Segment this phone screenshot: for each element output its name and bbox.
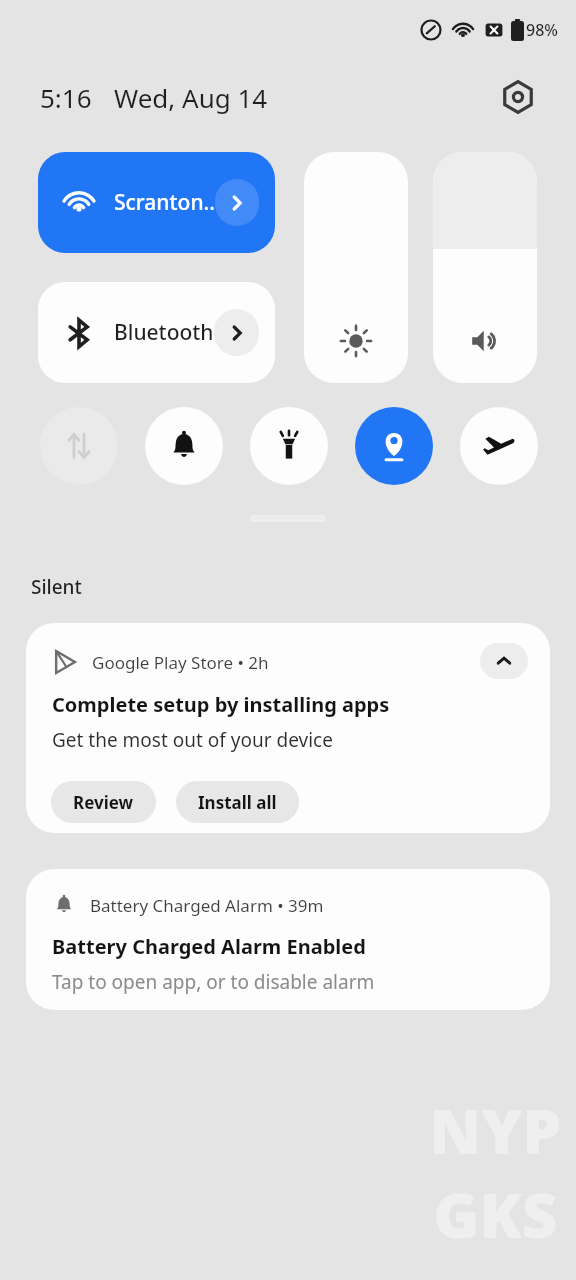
staticText: 5:16: [40, 80, 92, 115]
staticText: Get the most out of your device: [52, 727, 333, 753]
button[interactable]: Airplane mode: [460, 407, 538, 485]
staticText: Wed, Aug 14: [114, 80, 268, 115]
button[interactable]: Collapse notification: [480, 643, 528, 679]
button[interactable]: Ring mode: [145, 407, 223, 485]
staticText: Install all: [198, 791, 277, 814]
button[interactable]: Settings: [496, 75, 540, 119]
staticText: GKS: [433, 1172, 558, 1256]
staticText: Battery Charged Alarm • 39m: [90, 894, 324, 917]
staticText: 98%: [526, 19, 558, 41]
button[interactable]: Install all: [176, 781, 299, 823]
staticText: Battery Charged Alarm Enabled: [52, 933, 366, 960]
button[interactable]: Review: [51, 781, 156, 823]
button[interactable]: Open Scranton.. settings: [215, 179, 259, 226]
button[interactable]: Scranton..: [38, 152, 275, 253]
staticText: Google Play Store • 2h: [92, 651, 269, 674]
button[interactable]: Mobile data: [40, 407, 118, 485]
staticText: Bluetooth: [114, 318, 214, 347]
button[interactable]: Volume: [433, 152, 537, 383]
button[interactable]: Battery Charged Alarm • 39m: [26, 869, 550, 1010]
button[interactable]: Google Play Store • 2h: [26, 623, 550, 833]
button[interactable]: Location: [355, 407, 433, 485]
button[interactable]: Brightness: [304, 152, 408, 383]
staticText: NYP: [429, 1088, 562, 1172]
button[interactable]: Open Bluetooth settings: [214, 309, 259, 356]
staticText: Scranton..: [114, 188, 215, 217]
staticText: Silent: [31, 574, 82, 600]
button[interactable]: Bluetooth: [38, 282, 275, 383]
button[interactable]: Flashlight: [250, 407, 328, 485]
staticText: Tap to open app, or to disable alarm: [52, 969, 375, 995]
staticText: Complete setup by installing apps: [52, 691, 390, 718]
staticText: Review: [73, 791, 134, 814]
